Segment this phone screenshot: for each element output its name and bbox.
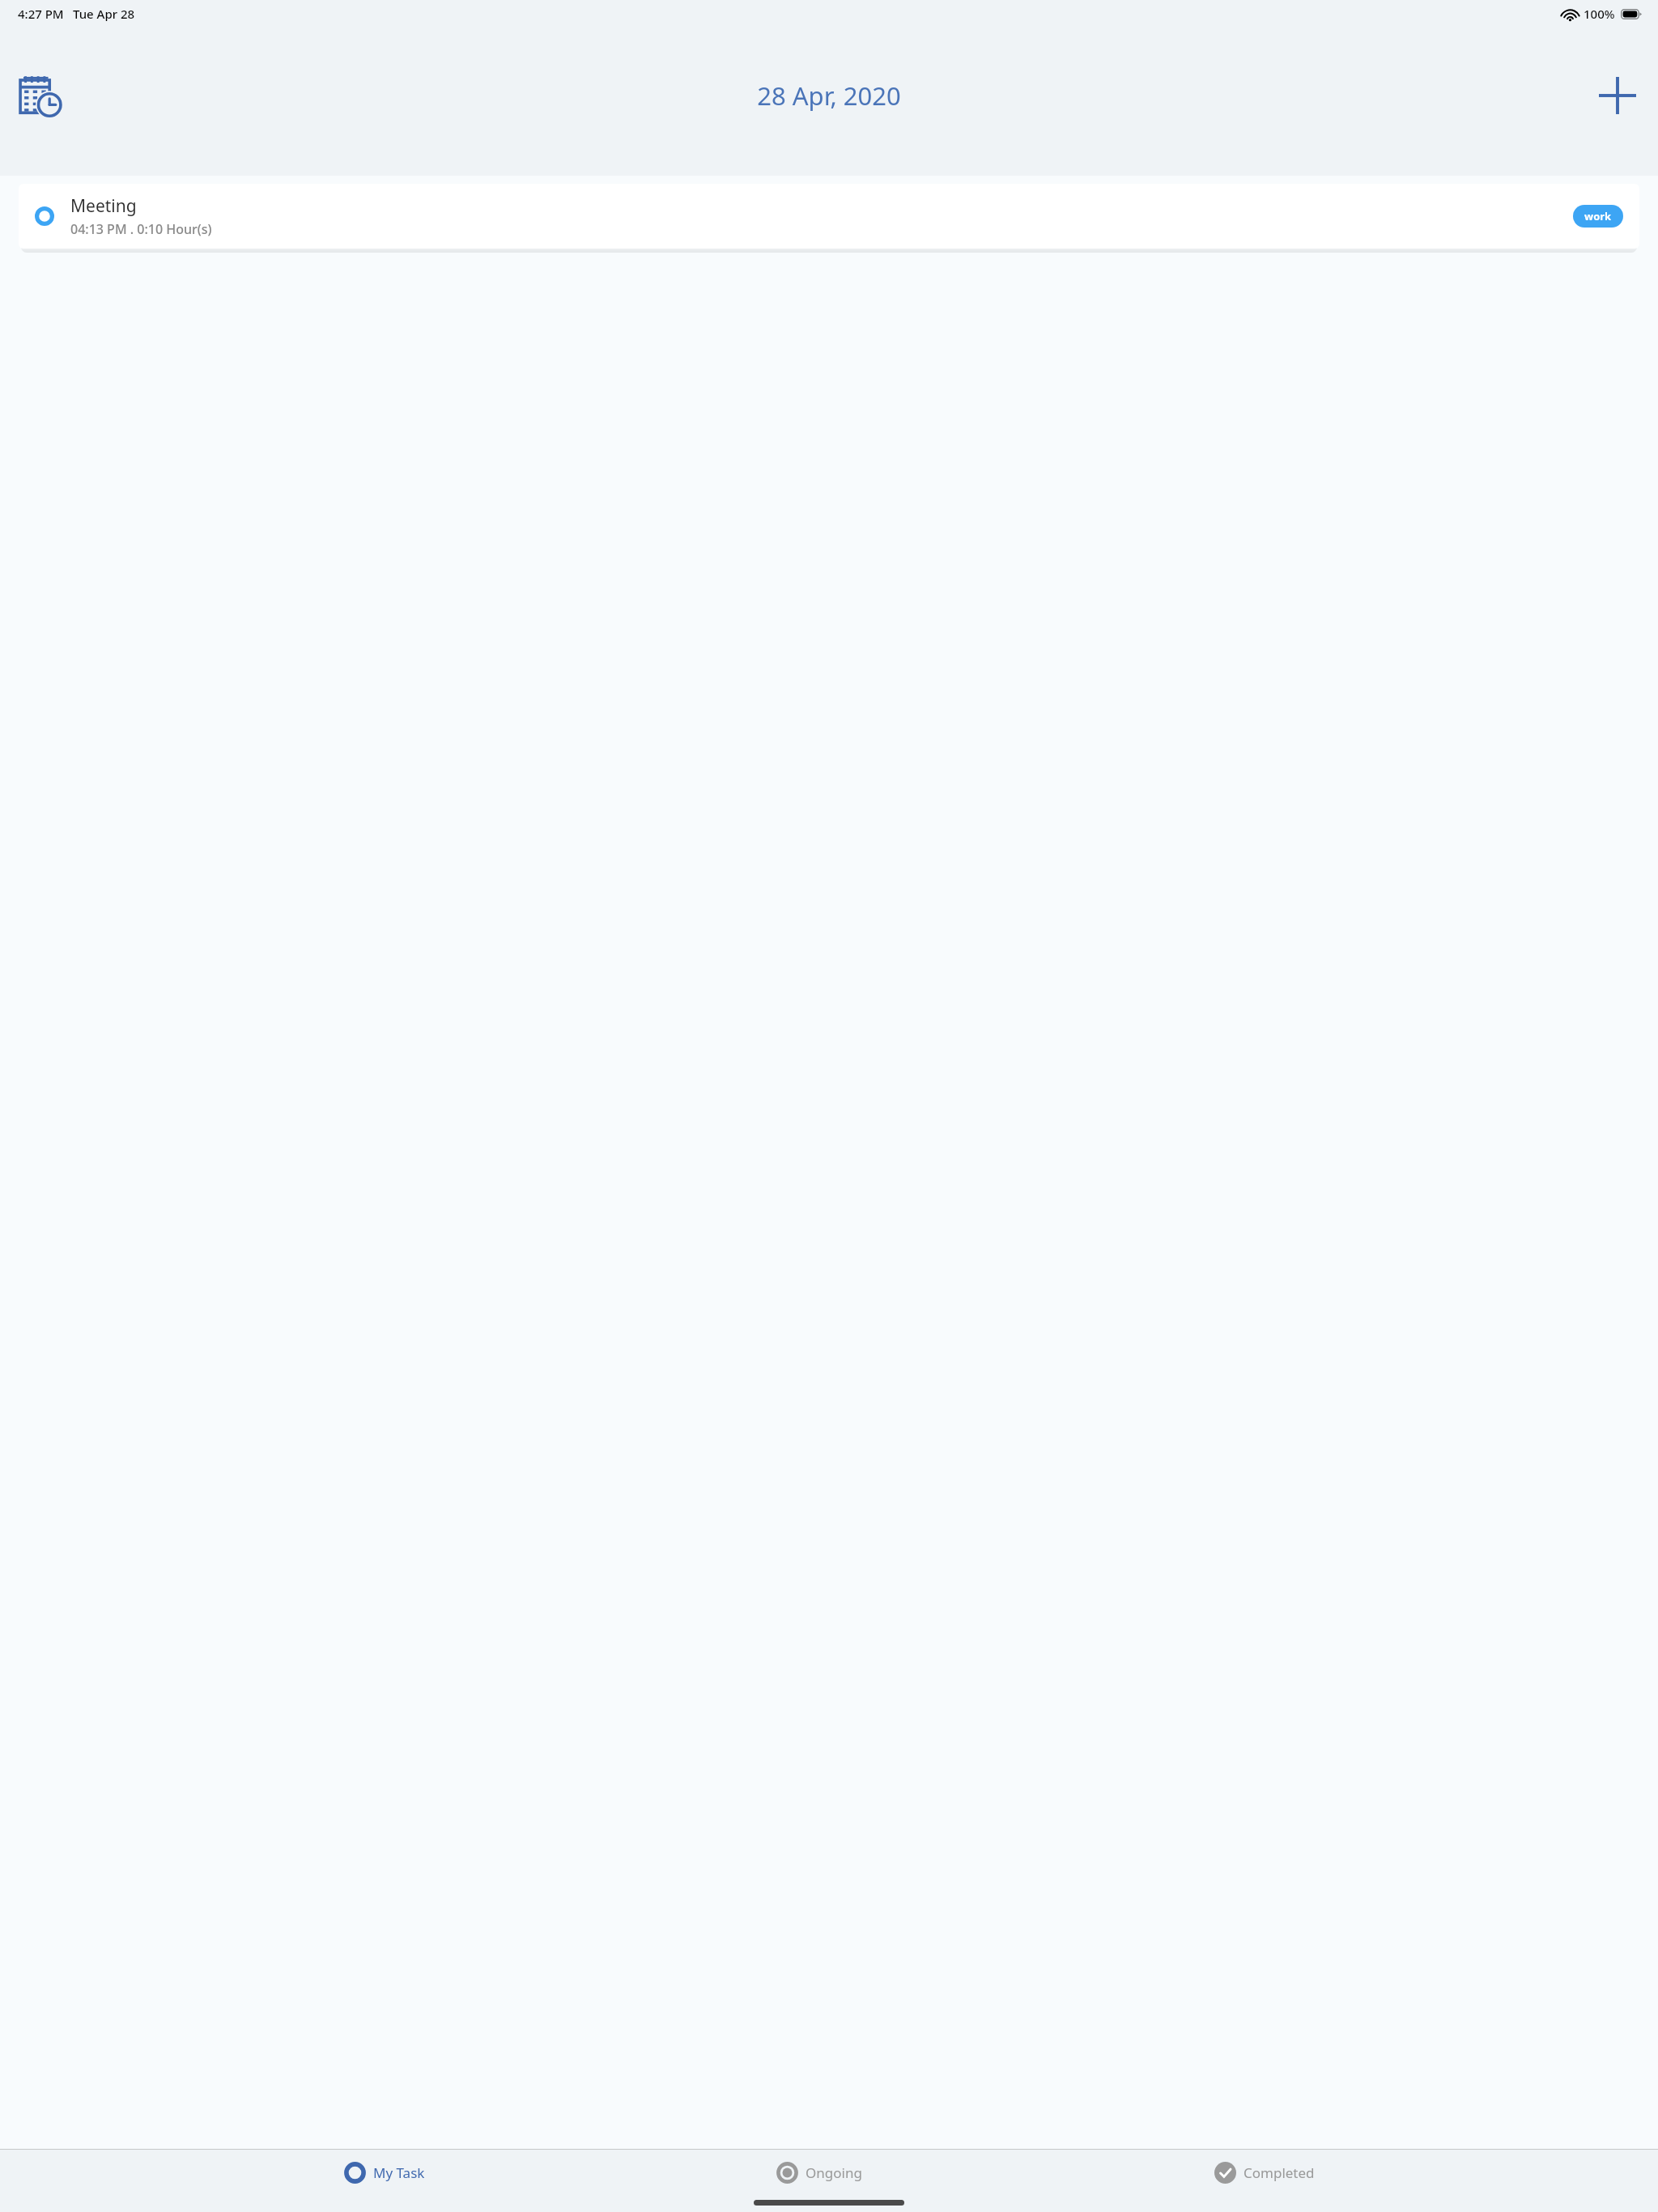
button[interactable]: Add task [1588,66,1647,125]
staticText: Completed [1243,2163,1315,2182]
button[interactable]: Meeting [19,184,1639,249]
staticText: Tue Apr 28 [73,6,135,22]
staticText: Meeting [70,194,137,218]
staticText: My Task [373,2163,425,2182]
staticText: 28 Apr, 2020 [757,79,901,113]
staticText: 4:27 PM [18,6,64,22]
button[interactable]: work [1573,205,1623,228]
staticText: Ongoing [806,2163,862,2182]
button[interactable]: My Task [336,2159,433,2187]
staticText: work [1584,209,1612,223]
button[interactable]: Completed [1206,2159,1323,2187]
staticText: 100% [1584,6,1615,22]
button[interactable]: Ongoing [768,2159,870,2187]
staticText: 04:13 PM . 0:10 Hour(s) [70,220,212,238]
button[interactable]: Calendar schedule [11,66,70,125]
